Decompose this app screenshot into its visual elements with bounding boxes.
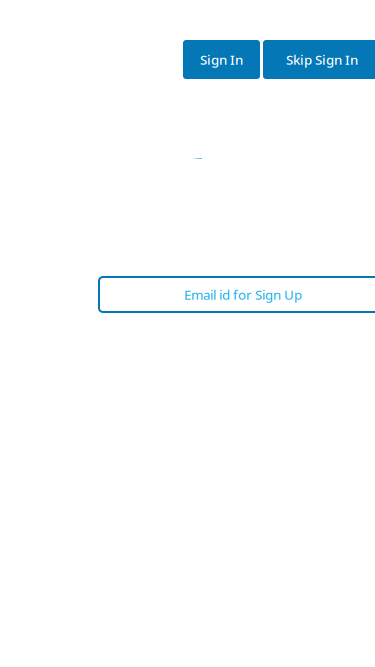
staticText: Sign In: [200, 51, 243, 68]
button[interactable]: Email id for Sign Up: [99, 277, 375, 312]
button[interactable]: Sign In: [183, 40, 260, 79]
staticText: Skip Sign In: [286, 51, 358, 68]
staticText: Email id for Sign Up: [184, 286, 302, 303]
button[interactable]: Skip Sign In: [263, 40, 375, 79]
